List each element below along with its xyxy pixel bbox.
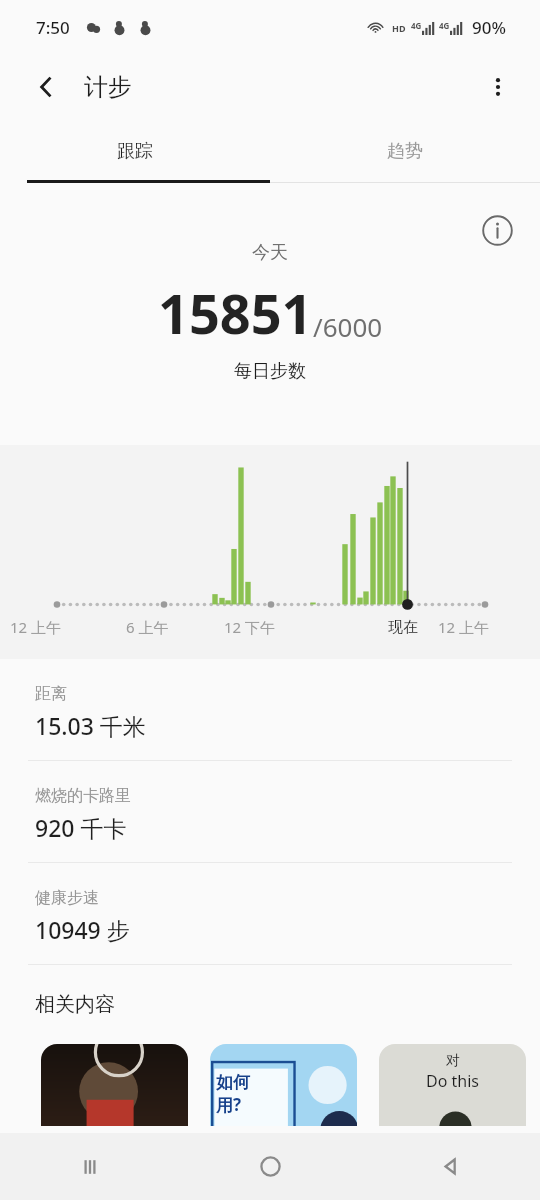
button[interactable]: 跟踪 bbox=[0, 120, 270, 183]
staticText: 对 bbox=[446, 1052, 460, 1070]
staticText: 15851 bbox=[158, 276, 313, 350]
button[interactable]: Related article bbox=[379, 1044, 526, 1126]
staticText: 每日步数 bbox=[234, 360, 306, 383]
staticText: Do this bbox=[426, 1070, 479, 1092]
staticText: 15.03 千米 bbox=[35, 710, 146, 741]
button[interactable]: 距离 bbox=[0, 659, 540, 760]
staticText: 12 下午 bbox=[224, 617, 276, 637]
button[interactable]: 健康步速 bbox=[0, 863, 540, 964]
button[interactable]: Related article bbox=[210, 1044, 357, 1126]
staticText: 4G bbox=[439, 20, 450, 31]
button[interactable]: Back bbox=[360, 1133, 540, 1200]
button[interactable]: 燃烧的卡路里 bbox=[0, 761, 540, 862]
staticText: 现在 bbox=[388, 618, 418, 637]
staticText: 6 上午 bbox=[126, 617, 169, 637]
staticText: 920 千卡 bbox=[35, 812, 127, 843]
staticText: 距离 bbox=[35, 684, 67, 704]
button[interactable]: 趋势 bbox=[270, 120, 540, 183]
button[interactable]: Recent apps bbox=[0, 1133, 180, 1200]
staticText: 如何 bbox=[216, 1072, 250, 1093]
staticText: 跟踪 bbox=[117, 140, 153, 163]
button[interactable]: Back bbox=[22, 63, 70, 111]
staticText: /6000 bbox=[313, 309, 383, 344]
staticText: 健康步速 bbox=[35, 888, 99, 908]
staticText: 12 上午 bbox=[438, 617, 490, 637]
staticText: 燃烧的卡路里 bbox=[35, 786, 131, 806]
staticText: 4G bbox=[411, 20, 422, 31]
button[interactable]: Home bbox=[180, 1133, 360, 1200]
staticText: 用? bbox=[216, 1093, 242, 1116]
staticText: 今天 bbox=[252, 241, 288, 264]
staticText: 计步 bbox=[84, 72, 132, 102]
staticText: 相关内容 bbox=[35, 992, 115, 1017]
button[interactable]: More options bbox=[474, 63, 522, 111]
button[interactable]: Related article bbox=[41, 1044, 188, 1126]
staticText: 趋势 bbox=[387, 140, 423, 163]
staticText: HD bbox=[392, 22, 406, 34]
staticText: 90% bbox=[472, 16, 506, 39]
staticText: 10949 步 bbox=[35, 914, 130, 945]
staticText: 7:50 bbox=[36, 16, 70, 39]
button[interactable]: Information bbox=[474, 207, 520, 253]
staticText: 12 上午 bbox=[10, 617, 62, 637]
